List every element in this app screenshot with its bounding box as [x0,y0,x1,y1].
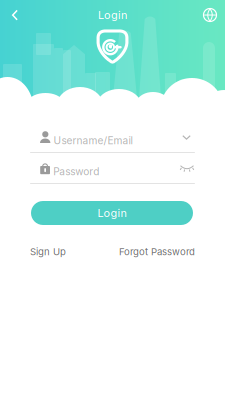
button[interactable]: Forgot Password [119,246,195,258]
button[interactable]: Login [31,201,193,225]
staticText: Login [97,206,126,220]
button[interactable]: Sign Up [30,246,66,258]
button[interactable]: Username/Email [30,129,195,152]
staticText: Username/Email [53,134,132,147]
button[interactable]: Back [0,1,30,29]
staticText: Login [98,8,127,22]
staticText: Password [53,165,99,178]
staticText: Sign Up [30,246,66,258]
staticText: Forgot Password [119,246,195,258]
button[interactable]: Language [195,1,225,29]
button[interactable]: Password [30,160,195,183]
